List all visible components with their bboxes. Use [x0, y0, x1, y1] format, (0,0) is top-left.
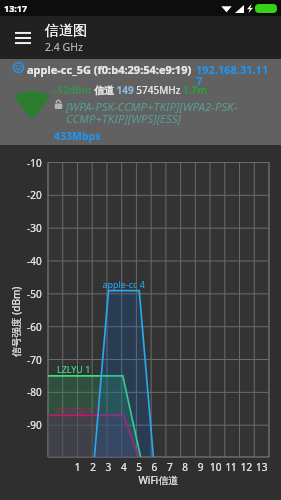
staticText: 信道图	[45, 22, 87, 40]
staticText: 2.4 GHz	[45, 40, 83, 54]
button[interactable]: apple-cc_5G (f0:b4:29:54:e9:19)	[0, 59, 281, 145]
staticText: 13:17	[4, 2, 28, 14]
staticText: 433Mbps	[54, 129, 101, 143]
staticText: -52dBm 信道 149 5745MHz 1.7m	[54, 83, 207, 97]
staticText: 192.168.31.117	[196, 62, 272, 88]
staticText: apple-cc_5G (f0:b4:29:54:e9:19)	[27, 62, 192, 77]
staticText: [WPA-PSK-CCMP+TKIP][WPA2-PSK-CCMP+TKIP][…	[66, 99, 268, 126]
button[interactable]: Open navigation menu	[0, 16, 45, 59]
